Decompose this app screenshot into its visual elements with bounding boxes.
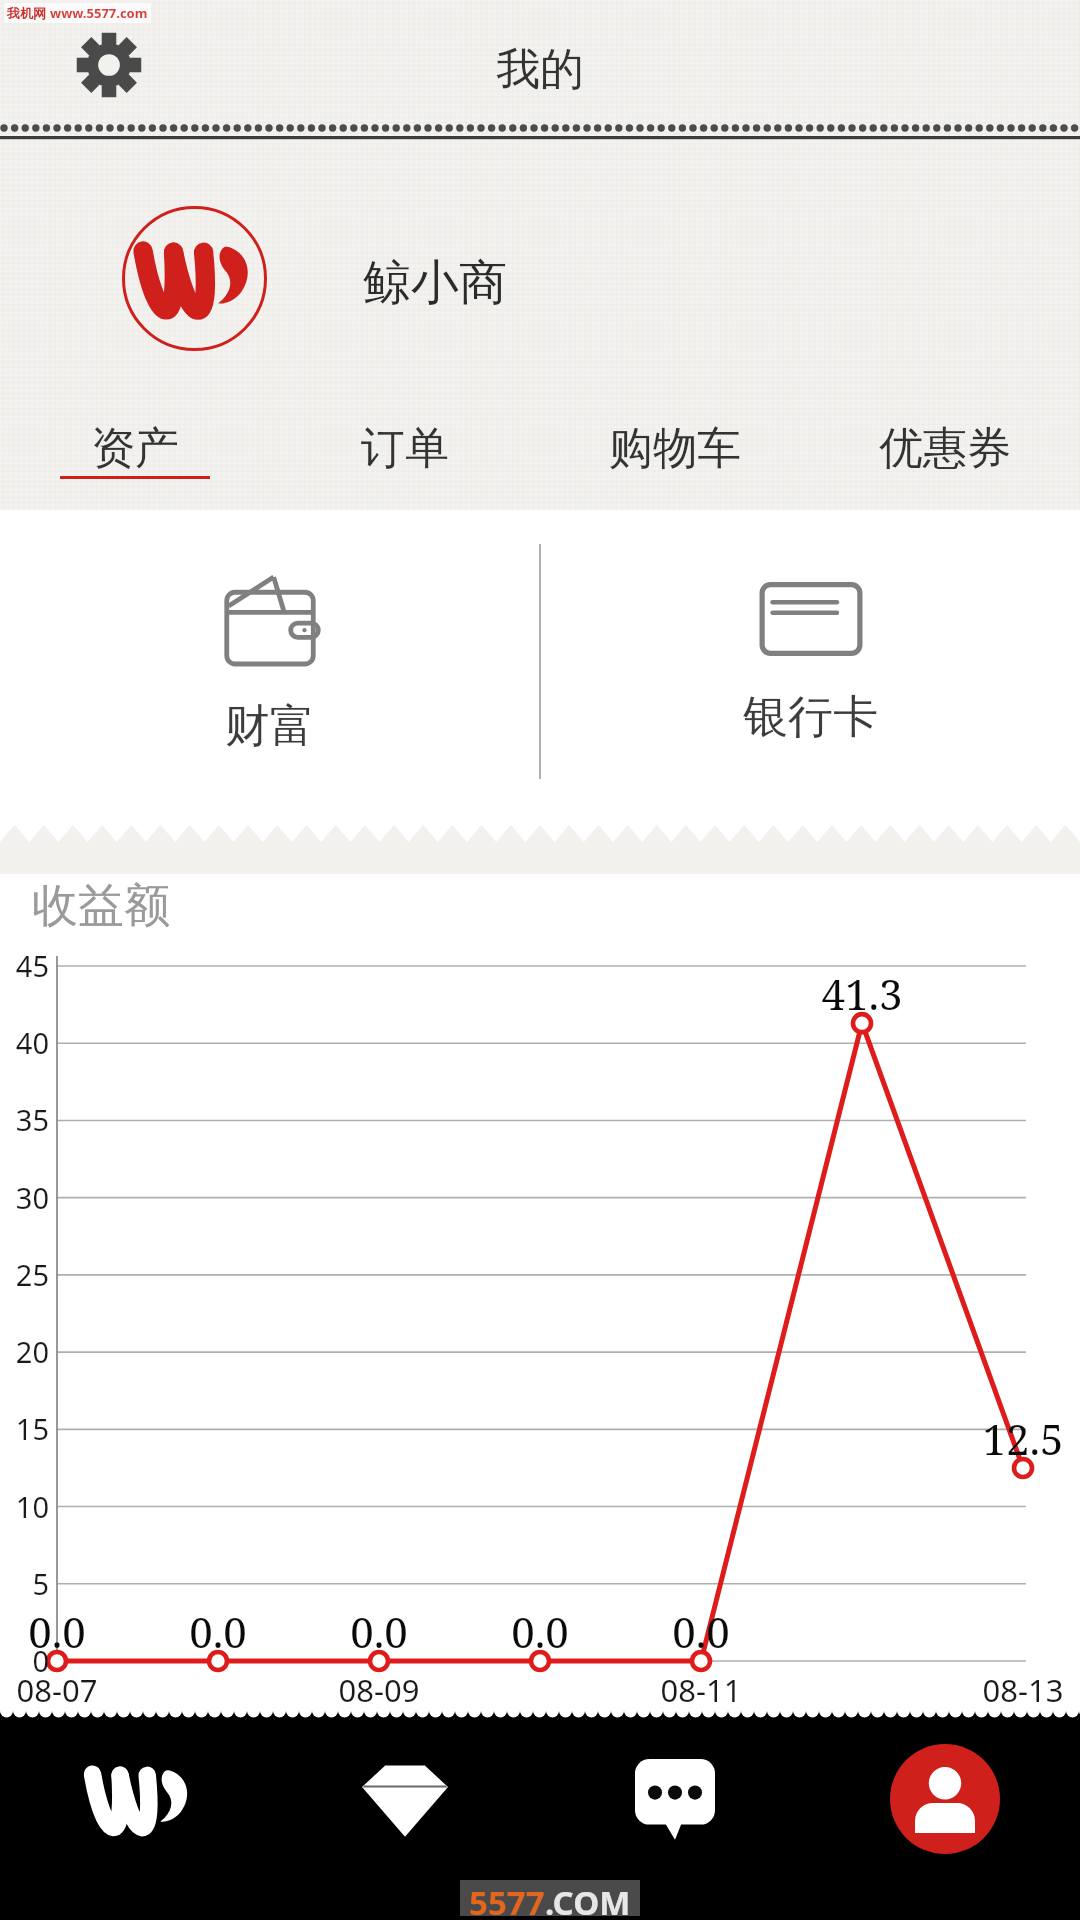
button[interactable]: 鲸小商	[0, 190, 1080, 370]
button[interactable]: Home	[0, 1711, 270, 1887]
staticText: 5	[4, 1564, 49, 1603]
staticText: 财富	[225, 698, 315, 755]
staticText: www.5577.com	[50, 4, 148, 22]
staticText: 45	[4, 946, 49, 985]
staticText: 我机网	[7, 5, 46, 21]
staticText: 20	[4, 1332, 49, 1371]
staticText: 40	[4, 1023, 49, 1062]
staticText: 0.0	[319, 1603, 439, 1660]
staticText: 35	[4, 1100, 49, 1139]
staticText: 0	[4, 1641, 49, 1680]
staticText: 0.0	[480, 1603, 600, 1660]
staticText: 银行卡	[743, 689, 878, 746]
button[interactable]: Settings	[70, 26, 148, 104]
staticText: 30	[4, 1178, 49, 1217]
staticText: .COM	[545, 1880, 631, 1916]
staticText: 优惠券	[879, 421, 1011, 476]
button[interactable]: Messages	[540, 1711, 810, 1887]
staticText: 08-11	[641, 1669, 761, 1711]
staticText: 购物车	[609, 421, 741, 476]
button[interactable]: 财富	[0, 510, 540, 820]
staticText: 08-13	[963, 1669, 1080, 1711]
button[interactable]: Diamond	[270, 1711, 540, 1887]
staticText: 5577	[469, 1880, 545, 1916]
staticText: 25	[4, 1255, 49, 1294]
staticText: 41.3	[802, 965, 922, 1022]
button[interactable]: Profile	[810, 1711, 1080, 1887]
button[interactable]: 银行卡	[540, 510, 1080, 820]
staticText: 资产	[91, 421, 179, 476]
staticText: 12.5	[963, 1410, 1080, 1467]
button[interactable]: 资产	[0, 421, 270, 479]
staticText: 08-09	[319, 1669, 439, 1711]
staticText: 鲸小商	[363, 253, 507, 313]
staticText: 收益额	[32, 877, 170, 935]
button[interactable]: 优惠券	[810, 421, 1080, 476]
staticText: 0.0	[158, 1603, 278, 1660]
staticText: 0.0	[641, 1603, 761, 1660]
staticText: 10	[4, 1487, 49, 1526]
staticText: 08-07	[0, 1669, 117, 1711]
staticText: 订单	[361, 421, 449, 476]
staticText: 我的	[0, 42, 1080, 97]
staticText: 15	[4, 1409, 49, 1448]
button[interactable]: 订单	[270, 421, 540, 476]
button[interactable]: 购物车	[540, 421, 810, 476]
staticText: 0.0	[0, 1603, 117, 1660]
